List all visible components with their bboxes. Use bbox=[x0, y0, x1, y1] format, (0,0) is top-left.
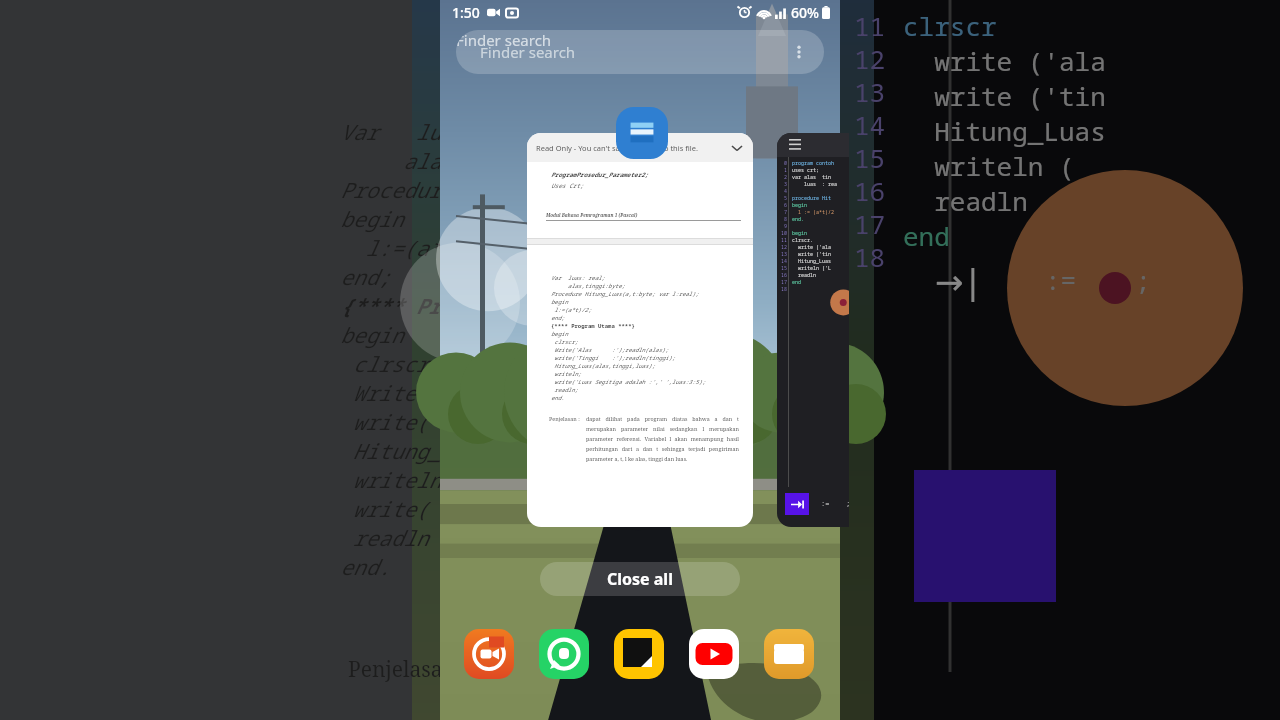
staticText: l := (a*t)/2 bbox=[792, 209, 835, 216]
staticText: Procedure Hitung_Luas(a,t:byte; var l:re… bbox=[551, 290, 699, 298]
staticText: 1:50 bbox=[452, 3, 480, 22]
staticText: procedure Hit bbox=[792, 195, 832, 202]
staticText: Procedure Hitung bbox=[340, 176, 542, 205]
staticText: 15 bbox=[781, 265, 788, 272]
staticText: Penjelasan : bbox=[348, 655, 468, 684]
staticText: Var luas: real; bbox=[340, 118, 555, 147]
staticText: 8 bbox=[784, 216, 788, 223]
staticText: end bbox=[903, 218, 950, 253]
staticText: 15 bbox=[854, 140, 886, 173]
staticText: write ('tin bbox=[903, 78, 1106, 113]
staticText: write ('ala bbox=[903, 43, 1106, 78]
staticText: writeln ('L bbox=[792, 265, 832, 272]
staticText: := bbox=[1045, 262, 1077, 297]
staticText: end; bbox=[340, 263, 391, 292]
button[interactable]: WhatsApp bbox=[539, 629, 589, 679]
staticText: writeln; bbox=[551, 370, 582, 378]
staticText: clrscr bbox=[340, 350, 429, 379]
button[interactable]: Files bbox=[764, 629, 814, 679]
staticText: Uses Crt; bbox=[551, 182, 584, 190]
staticText: Hitung_ bbox=[340, 437, 441, 466]
staticText: begin bbox=[551, 330, 568, 338]
button[interactable]: Read Only - You can't save changes to th… bbox=[527, 133, 753, 527]
staticText: {**** Pr bbox=[340, 292, 441, 321]
staticText: clrscr; bbox=[551, 338, 578, 346]
staticText: begin bbox=[340, 205, 403, 234]
staticText: Close all bbox=[607, 568, 673, 590]
staticText: 13 bbox=[854, 74, 886, 107]
staticText: readln bbox=[340, 524, 429, 553]
button[interactable]: Finder search bbox=[456, 30, 824, 74]
staticText: 9 bbox=[784, 223, 788, 230]
staticText: Write('Alas :');readln(alas); bbox=[551, 346, 669, 354]
staticText: readln bbox=[903, 183, 1028, 218]
staticText: 4 bbox=[784, 188, 788, 195]
staticText: begin bbox=[340, 321, 403, 350]
staticText: 6 bbox=[784, 202, 788, 209]
staticText: Modul Bahasa Pemrograman 1 (Pascal) bbox=[546, 212, 638, 218]
staticText: write ('ala bbox=[792, 244, 832, 251]
staticText: end bbox=[792, 279, 802, 286]
staticText: writeln bbox=[340, 466, 441, 495]
staticText: end; bbox=[551, 314, 565, 322]
staticText: readln; bbox=[551, 386, 578, 394]
button[interactable]: Document app icon bbox=[616, 107, 668, 159]
staticText: 2 bbox=[784, 174, 788, 181]
staticText: write( bbox=[340, 408, 429, 437]
staticText: end. bbox=[551, 394, 565, 402]
button[interactable]: Tab bbox=[785, 493, 809, 515]
staticText: 12 bbox=[854, 41, 886, 74]
button[interactable]: Screen recorder bbox=[464, 629, 514, 679]
staticText: 16 bbox=[854, 173, 886, 206]
staticText: 14 bbox=[781, 258, 788, 265]
button[interactable]: Menu bbox=[777, 133, 849, 527]
staticText: end. bbox=[792, 216, 805, 223]
staticText: write ('tin bbox=[792, 251, 832, 258]
staticText: 17 bbox=[781, 279, 788, 286]
button[interactable]: Menu bbox=[787, 137, 803, 153]
staticText: write( bbox=[340, 495, 429, 524]
staticText: Read Only - You can't save changes to th… bbox=[536, 143, 698, 153]
button[interactable]: More options bbox=[788, 41, 810, 63]
staticText: var alas tin bbox=[792, 174, 832, 181]
staticText: l:=(a*t)/2; bbox=[551, 306, 592, 314]
button[interactable]: Collapse bbox=[729, 140, 745, 156]
staticText: clrscr. bbox=[792, 237, 814, 244]
staticText: 11 bbox=[781, 237, 788, 244]
staticText: end. bbox=[340, 553, 391, 582]
staticText: 12 bbox=[781, 244, 788, 251]
staticText: begin bbox=[792, 230, 808, 237]
staticText: Hitung_Luas bbox=[792, 258, 832, 265]
staticText: 60% bbox=[791, 3, 819, 22]
staticText: Write( bbox=[340, 379, 429, 408]
staticText: ; bbox=[1135, 262, 1151, 297]
button[interactable]: YouTube bbox=[689, 629, 739, 679]
staticText: readln bbox=[792, 272, 817, 279]
staticText: write('Tinggi :');readln(tinggi); bbox=[551, 354, 676, 362]
staticText: luas : rea bbox=[792, 181, 838, 188]
staticText: Finder search bbox=[456, 30, 552, 50]
staticText: 0 bbox=[784, 160, 788, 167]
staticText: := bbox=[821, 499, 830, 509]
staticText: Hitung_Luas bbox=[903, 113, 1106, 148]
staticText: 10 bbox=[781, 230, 788, 237]
staticText: alas, bbox=[340, 147, 466, 176]
staticText: uses crt; bbox=[792, 167, 820, 174]
staticText: 1 bbox=[784, 167, 788, 174]
staticText: l:=(a*t bbox=[340, 234, 454, 263]
staticText: clrscr bbox=[903, 8, 997, 43]
staticText: begin bbox=[792, 202, 808, 209]
staticText: 16 bbox=[781, 272, 788, 279]
button[interactable]: Close all bbox=[540, 562, 740, 596]
button[interactable]: Notes bbox=[614, 629, 664, 679]
staticText: 13 bbox=[781, 251, 788, 258]
staticText: 14 bbox=[854, 107, 886, 140]
staticText: 18 bbox=[854, 239, 886, 272]
staticText: 3 bbox=[784, 181, 788, 188]
staticText: write('Luas Segitiga adalah :',' ',luas:… bbox=[551, 378, 706, 386]
staticText: 11 bbox=[854, 8, 886, 41]
staticText: Finder search bbox=[480, 42, 576, 62]
staticText: program contoh bbox=[792, 160, 835, 167]
staticText: writeln ( bbox=[903, 148, 1075, 183]
staticText: 5 bbox=[784, 195, 788, 202]
